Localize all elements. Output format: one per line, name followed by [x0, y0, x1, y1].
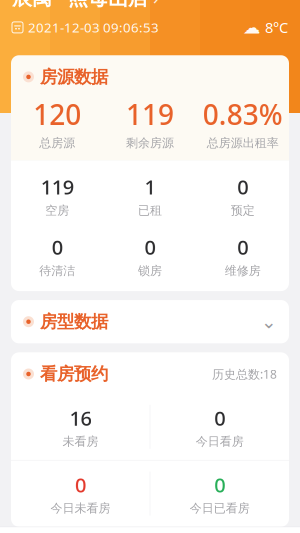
staticText: 0 [75, 471, 86, 498]
staticText: 0 [237, 234, 248, 260]
staticText: 空房 [45, 203, 69, 218]
staticText: 0.83% [203, 95, 283, 133]
staticText: 0 [237, 173, 248, 200]
button[interactable]: 房型数据 [11, 300, 289, 343]
staticText: 119 [126, 95, 174, 133]
staticText: 预定 [231, 203, 255, 218]
staticText: 锁房 [138, 263, 162, 278]
staticText: 119 [41, 173, 74, 200]
staticText: 房源数据 [40, 66, 108, 88]
staticText: 1 [144, 173, 155, 200]
staticText: 看房预约 [40, 363, 108, 385]
staticText: 维修房 [225, 263, 261, 278]
staticText: 2021-12-03 09:06:53 [28, 19, 159, 36]
staticText: 0 [214, 471, 225, 498]
button[interactable]: 辰寓 · 照母山店 [0, 0, 300, 11]
staticText: 120 [33, 95, 81, 133]
staticText: 历史总数:18 [212, 366, 277, 382]
staticText: ⌄ [261, 311, 277, 332]
staticText: ☁ [243, 18, 260, 37]
staticText: 待清洁 [39, 263, 75, 278]
staticText: 房型数据 [40, 311, 108, 332]
staticText: 辰寓 · 照母山店 [12, 0, 148, 11]
staticText: 剩余房源 [126, 136, 174, 150]
staticText: 8°C [265, 18, 288, 37]
staticText: 0 [52, 234, 63, 260]
staticText: 总房源出租率 [207, 136, 279, 150]
staticText: 未看房 [62, 434, 98, 449]
staticText: 总房源 [39, 136, 75, 150]
staticText: 已租 [138, 203, 162, 218]
staticText: 16 [69, 405, 91, 431]
staticText: › [153, 0, 159, 10]
staticText: 今日已看房 [190, 501, 250, 516]
staticText: 今日未看房 [50, 501, 110, 516]
staticText: 0 [214, 405, 225, 431]
staticText: 0 [144, 234, 155, 260]
staticText: 今日看房 [196, 434, 244, 449]
